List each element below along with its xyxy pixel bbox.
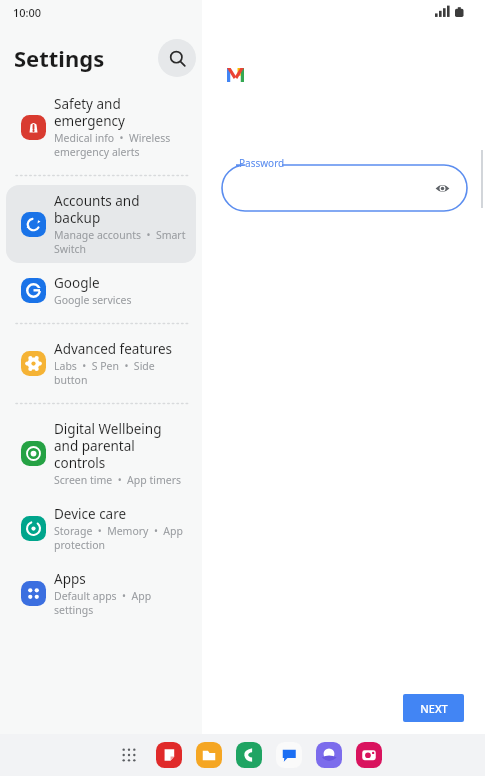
- button[interactable]: Camera: [355, 741, 383, 769]
- button[interactable]: Digital Wellbeing and parental controls: [6, 413, 196, 494]
- button[interactable]: Samsung Notes: [155, 741, 183, 769]
- button[interactable]: Google: [6, 267, 196, 314]
- button[interactable]: Internet: [315, 741, 343, 769]
- button[interactable]: Accounts and backup: [6, 185, 196, 263]
- button[interactable]: Messages: [275, 741, 303, 769]
- button[interactable]: Advanced features: [6, 333, 196, 394]
- button[interactable]: My Files: [195, 741, 223, 769]
- staticText: Settings: [14, 43, 105, 73]
- button[interactable]: Device care: [6, 498, 196, 559]
- staticText: Default apps • App settings: [54, 589, 188, 617]
- staticText: Google services: [54, 293, 132, 307]
- staticText: Storage • Memory • App protection: [54, 524, 188, 552]
- staticText: Google: [54, 274, 100, 292]
- button[interactable]: Apps: [6, 563, 196, 624]
- button[interactable]: Phone: [235, 741, 263, 769]
- staticText: Medical info • Wireless emergency alerts: [54, 131, 188, 159]
- button[interactable]: Show password: [431, 177, 453, 199]
- staticText: 10:00: [13, 5, 42, 20]
- staticText: Accounts and backup: [54, 192, 188, 227]
- staticText: Manage accounts • Smart Switch: [54, 228, 188, 256]
- staticText: Device care: [54, 505, 127, 523]
- button[interactable]: App drawer: [115, 741, 143, 769]
- staticText: Apps: [54, 570, 86, 588]
- button[interactable]: NEXT: [403, 694, 464, 722]
- staticText: Advanced features: [54, 340, 173, 358]
- staticText: Screen time • App timers: [54, 473, 182, 487]
- staticText: Digital Wellbeing and parental controls: [54, 420, 188, 472]
- staticText: Labs • S Pen • Side button: [54, 359, 188, 387]
- staticText: Password: [239, 156, 285, 170]
- staticText: Safety and emergency: [54, 95, 188, 130]
- staticText: NEXT: [420, 701, 448, 716]
- button[interactable]: Safety and emergency: [6, 88, 196, 166]
- button[interactable]: Search settings: [158, 39, 196, 77]
